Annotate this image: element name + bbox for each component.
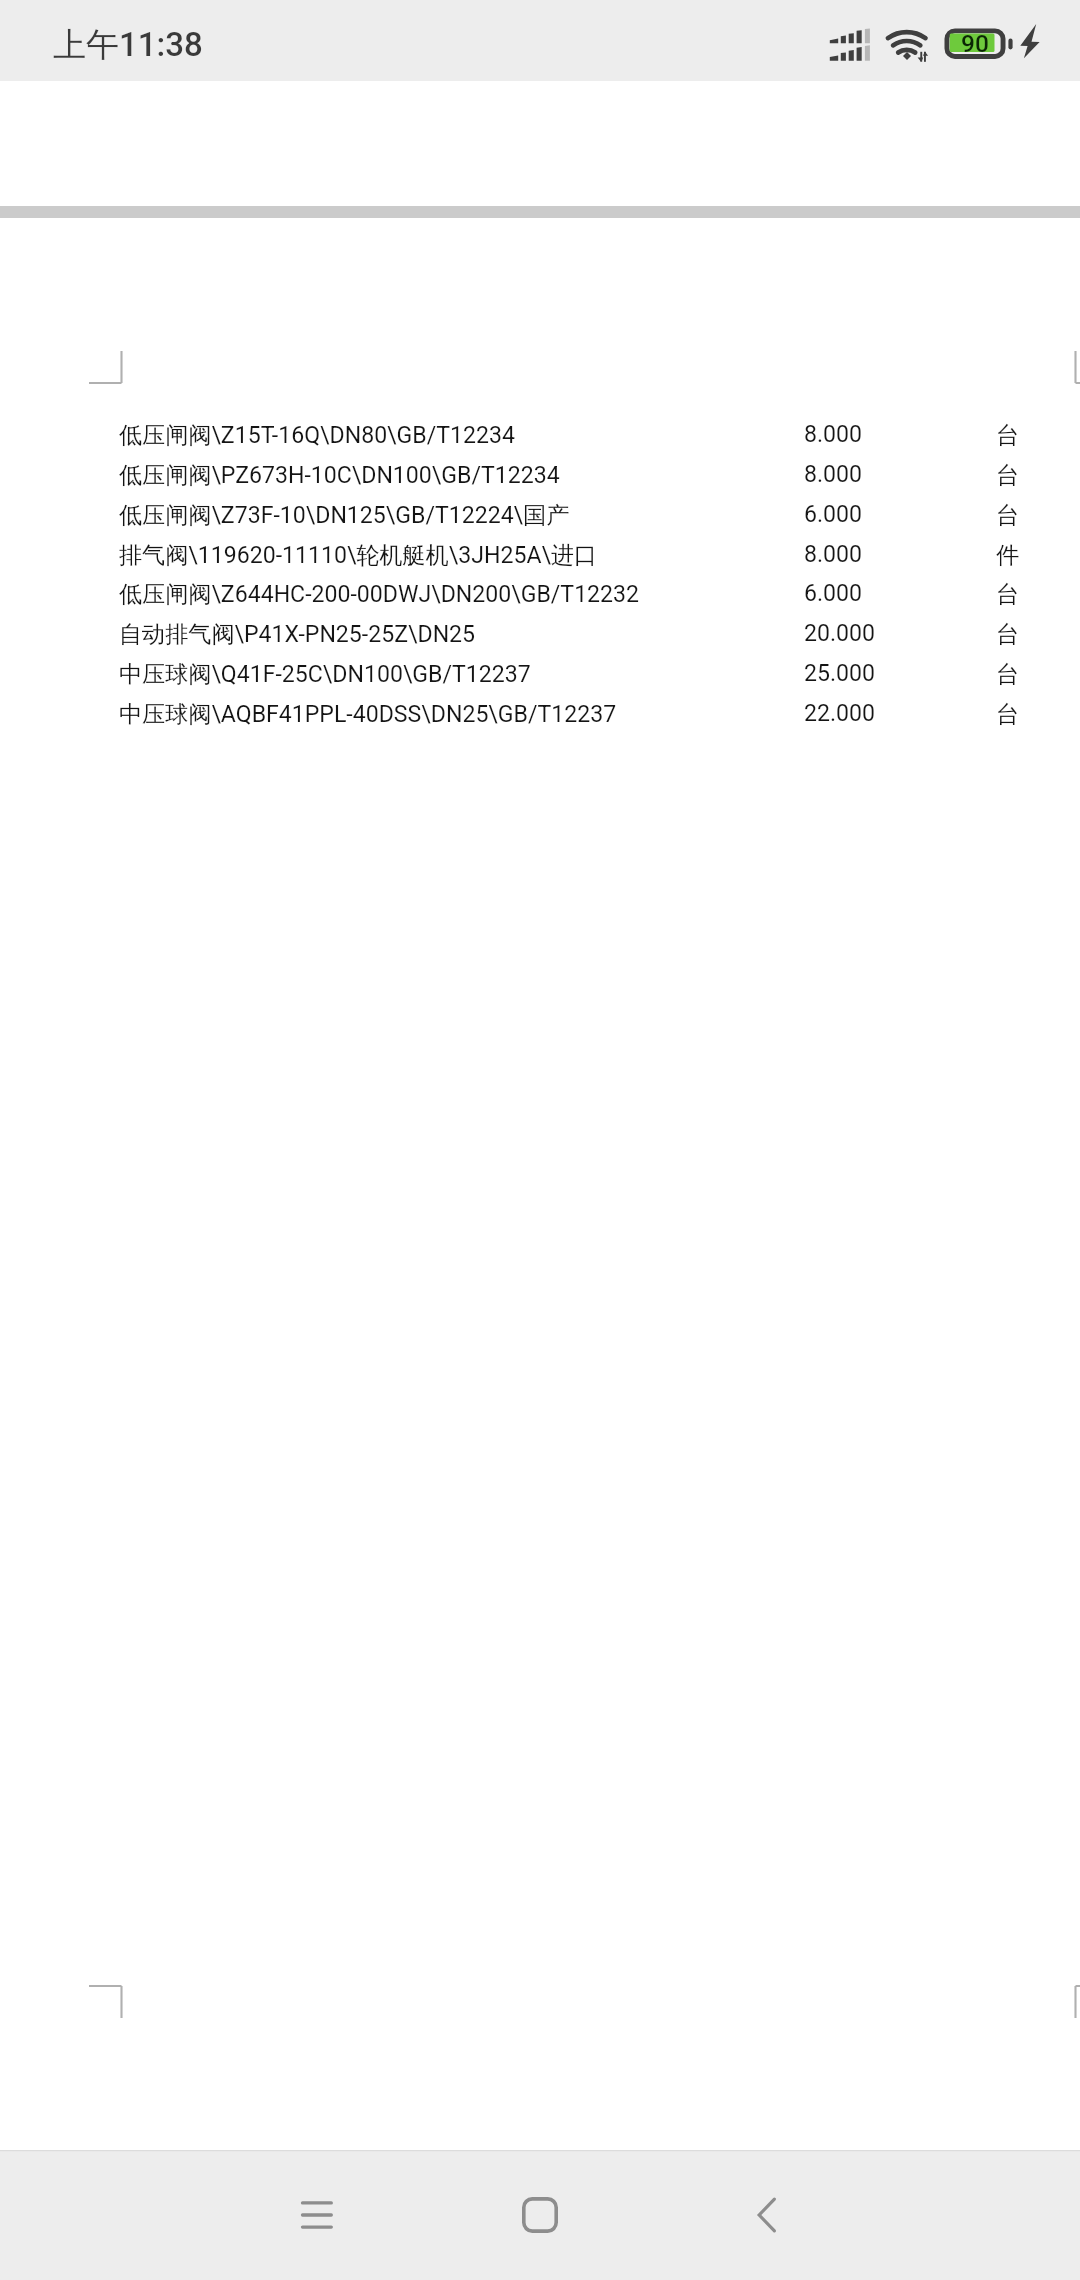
staticText: 台 bbox=[996, 421, 1020, 450]
staticText: 8.000 bbox=[804, 461, 863, 488]
button[interactable]: Document page bbox=[0, 0, 1080, 2280]
button[interactable]: Home bbox=[480, 2150, 600, 2280]
button[interactable]: 中压球阀\Q41F-25C\DN100\GB/T12237 bbox=[0, 660, 1080, 699]
staticText: 低压闸阀\PZ673H-10C\DN100\GB/T12234 bbox=[119, 461, 560, 490]
staticText: 台 bbox=[996, 461, 1020, 490]
staticText: 低压闸阀\Z15T-16Q\DN80\GB/T12234 bbox=[119, 421, 515, 450]
staticText: 台 bbox=[996, 580, 1020, 609]
staticText: 自动排气阀\P41X-PN25-25Z\DN25 bbox=[119, 620, 476, 649]
staticText: 90 bbox=[961, 29, 989, 58]
staticText: 22.000 bbox=[804, 700, 875, 727]
staticText: 台 bbox=[996, 660, 1020, 689]
staticText: 25.000 bbox=[804, 660, 875, 687]
staticText: 中压球阀\Q41F-25C\DN100\GB/T12237 bbox=[119, 660, 531, 689]
staticText: 台 bbox=[996, 700, 1020, 729]
button[interactable]: 低压闸阀\Z15T-16Q\DN80\GB/T12234 bbox=[0, 421, 1080, 460]
staticText: 6.000 bbox=[804, 501, 863, 528]
button[interactable]: 低压闸阀\PZ673H-10C\DN100\GB/T12234 bbox=[0, 461, 1080, 500]
button[interactable]: 低压闸阀\Z644HC-200-00DWJ\DN200\GB/T12232 bbox=[0, 580, 1080, 619]
staticText: 8.000 bbox=[804, 541, 863, 568]
button[interactable]: 自动排气阀\P41X-PN25-25Z\DN25 bbox=[0, 620, 1080, 659]
staticText: 上午11:38 bbox=[53, 24, 203, 66]
staticText: 件 bbox=[996, 541, 1020, 570]
staticText: 6.000 bbox=[804, 580, 863, 607]
staticText: 8.000 bbox=[804, 421, 863, 448]
button[interactable]: Recent apps bbox=[257, 2150, 377, 2280]
staticText: 低压闸阀\Z644HC-200-00DWJ\DN200\GB/T12232 bbox=[119, 580, 640, 609]
button[interactable]: 排气阀\119620-11110\轮机艇机\3JH25A\进口 bbox=[0, 541, 1080, 580]
button[interactable]: 低压闸阀\Z73F-10\DN125\GB/T12224\国产 bbox=[0, 501, 1080, 540]
staticText: 中压球阀\AQBF41PPL-40DSS\DN25\GB/T12237 bbox=[119, 700, 617, 729]
staticText: 排气阀\119620-11110\轮机艇机\3JH25A\进口 bbox=[119, 541, 598, 570]
staticText: 20.000 bbox=[804, 620, 875, 647]
staticText: 台 bbox=[996, 620, 1020, 649]
button[interactable]: 中压球阀\AQBF41PPL-40DSS\DN25\GB/T12237 bbox=[0, 700, 1080, 739]
staticText: 台 bbox=[996, 501, 1020, 530]
staticText: 低压闸阀\Z73F-10\DN125\GB/T12224\国产 bbox=[119, 501, 570, 530]
button[interactable]: Back bbox=[707, 2150, 827, 2280]
